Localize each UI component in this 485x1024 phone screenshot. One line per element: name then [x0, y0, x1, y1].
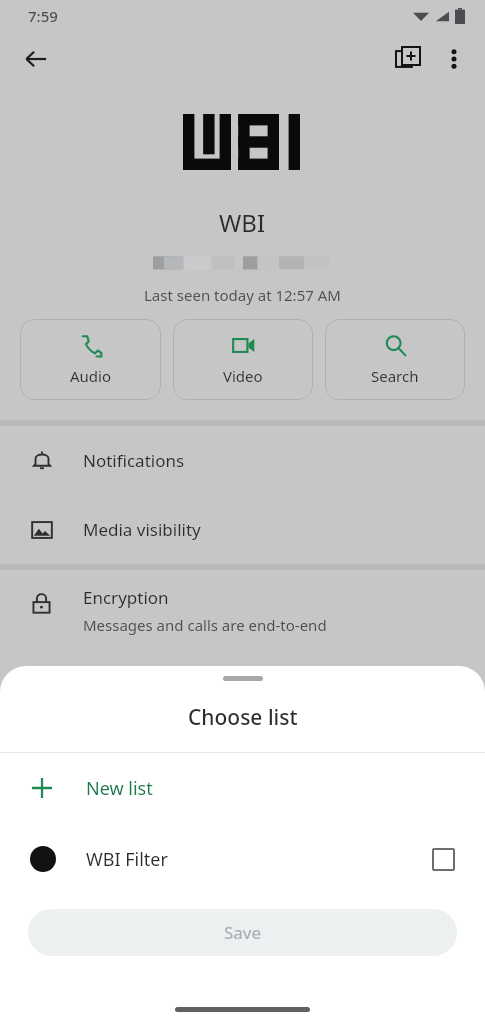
staticText: Notifications: [83, 449, 185, 472]
staticText: Encryption: [83, 586, 169, 609]
button[interactable]: Add to list: [385, 36, 431, 82]
button[interactable]: Audio: [20, 319, 161, 400]
staticText: Save: [224, 921, 262, 944]
button[interactable]: Encryption: [0, 570, 485, 660]
staticText: Messages and calls are end-to-end: [83, 615, 327, 635]
button[interactable]: Notifications: [0, 426, 485, 495]
button[interactable]: Video: [173, 319, 313, 400]
button[interactable]: Back: [12, 35, 60, 83]
button[interactable]: Search: [325, 319, 465, 400]
staticText: Last seen today at 12:57 AM: [144, 285, 341, 305]
staticText: New list: [86, 776, 153, 801]
button[interactable]: Save: [28, 909, 457, 956]
staticText: Search: [371, 366, 419, 386]
staticText: Media visibility: [83, 518, 201, 541]
staticText: 7:59: [28, 6, 58, 26]
staticText: Audio: [70, 366, 112, 386]
button[interactable]: More options: [431, 36, 477, 82]
button[interactable]: Media visibility: [0, 495, 485, 564]
staticText: WBI Filter: [86, 847, 168, 872]
staticText: WBI: [219, 206, 266, 239]
button[interactable]: New list: [0, 753, 485, 823]
button[interactable]: WBI Filter: [0, 823, 485, 895]
staticText: Video: [223, 366, 263, 386]
staticText: Choose list: [188, 703, 298, 732]
